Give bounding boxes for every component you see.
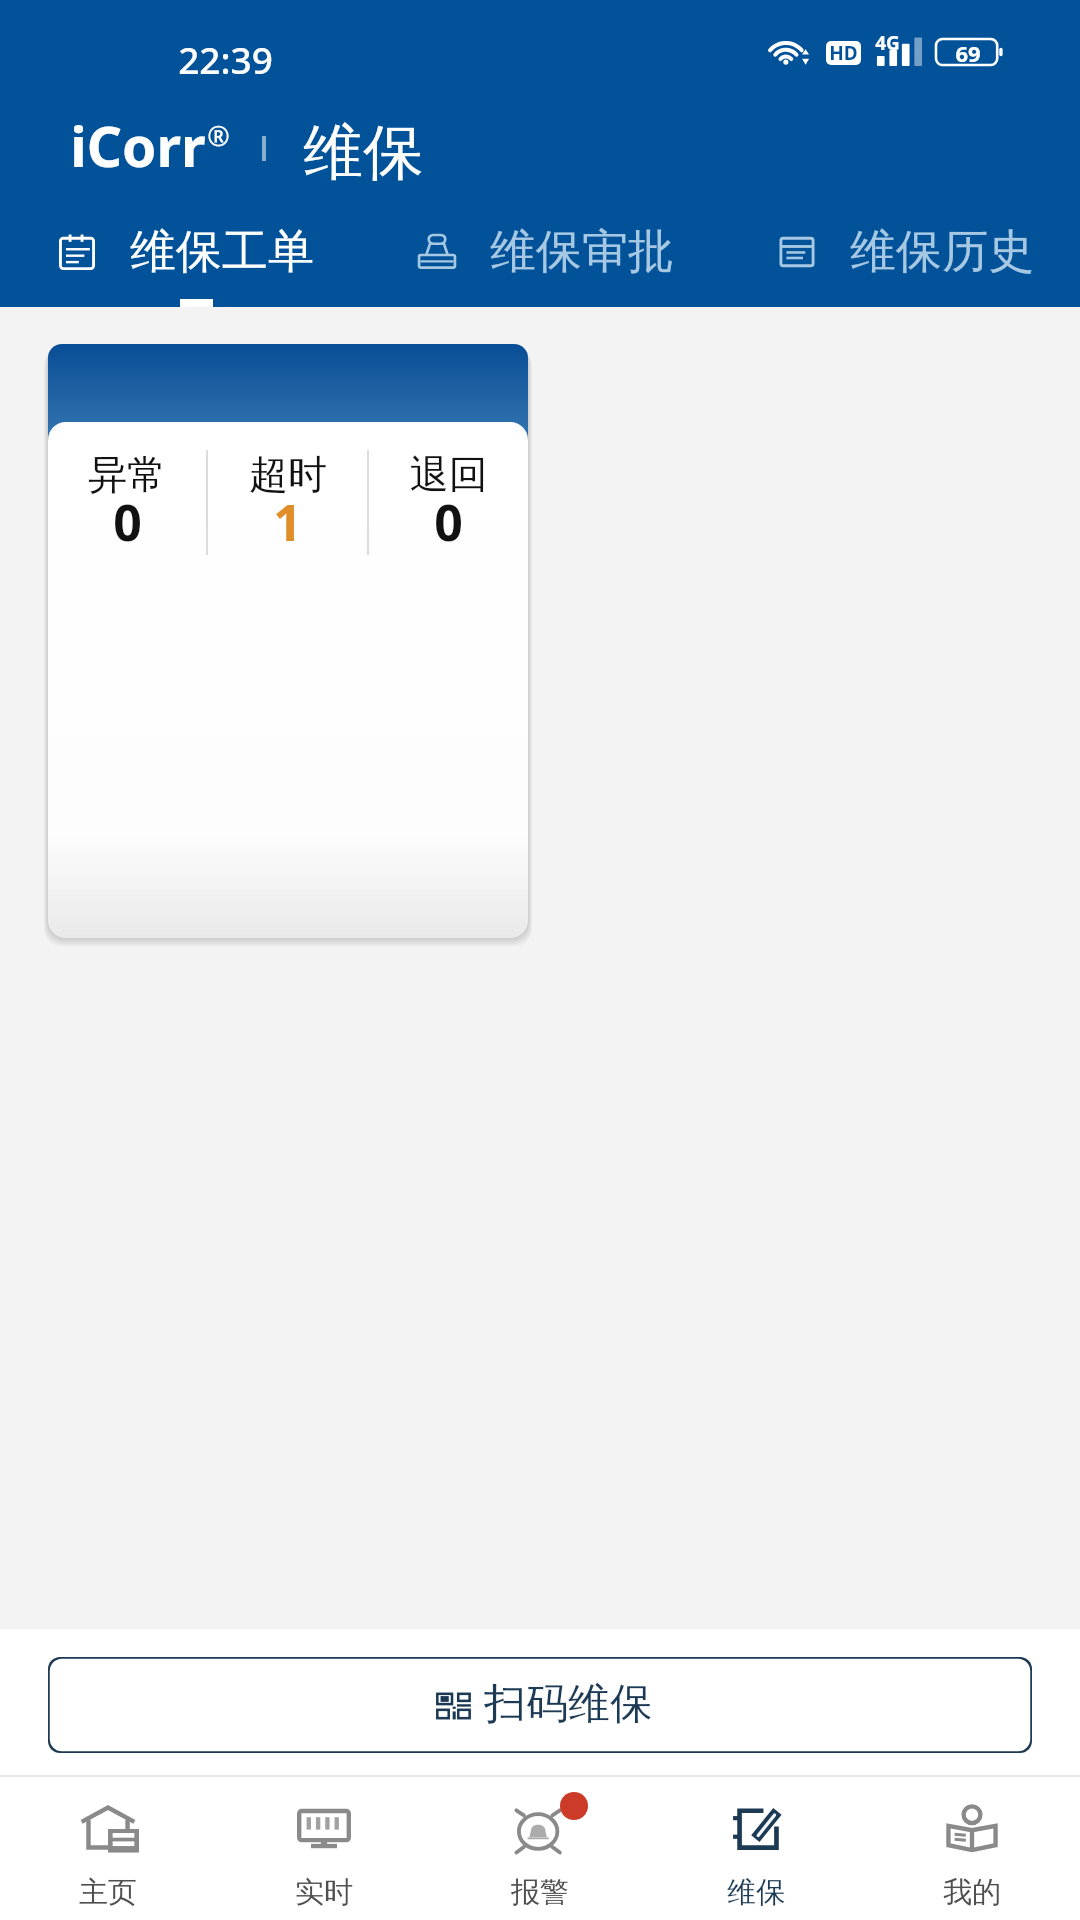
staticText: 维保审批 xyxy=(490,223,674,281)
button[interactable]: 异常 xyxy=(48,450,206,555)
staticText: 22:39 xyxy=(178,34,273,84)
staticText: iCorr xyxy=(70,108,206,183)
button[interactable]: 实时 xyxy=(216,1777,432,1911)
staticText: 维保 xyxy=(727,1874,785,1911)
staticText: 退回 xyxy=(410,450,488,499)
staticText: 0 xyxy=(113,488,142,556)
staticText: 4G xyxy=(875,30,900,56)
button[interactable]: 维保工单 xyxy=(0,205,360,281)
staticText: ® xyxy=(207,117,230,154)
staticText: 超时 xyxy=(249,450,327,499)
button[interactable]: 我的 xyxy=(864,1777,1080,1911)
button[interactable]: 扫码维保 xyxy=(48,1657,1032,1753)
staticText: 维保历史 xyxy=(850,223,1034,281)
button[interactable]: 报警 xyxy=(432,1777,648,1911)
staticText: 实时 xyxy=(295,1874,353,1911)
staticText: 69 xyxy=(955,38,981,64)
staticText: 1 xyxy=(273,488,302,556)
staticText: 报警 xyxy=(511,1874,569,1911)
staticText: 维保 xyxy=(303,115,423,191)
button[interactable]: 维保 xyxy=(648,1777,864,1911)
button[interactable]: 维保历史 xyxy=(720,205,1080,281)
button[interactable]: 主页 xyxy=(0,1777,216,1911)
button[interactable]: 退回 xyxy=(369,450,528,555)
staticText: 维保工单 xyxy=(130,223,314,281)
staticText: 我的 xyxy=(943,1874,1001,1911)
staticText: 扫码维保 xyxy=(484,1678,652,1731)
staticText: 0 xyxy=(434,488,463,556)
staticText: 异常 xyxy=(88,450,166,499)
staticText: HD xyxy=(829,41,858,64)
staticText: 主页 xyxy=(79,1874,137,1911)
button[interactable]: 超时 xyxy=(208,450,367,555)
button[interactable]: 维保审批 xyxy=(360,205,720,281)
